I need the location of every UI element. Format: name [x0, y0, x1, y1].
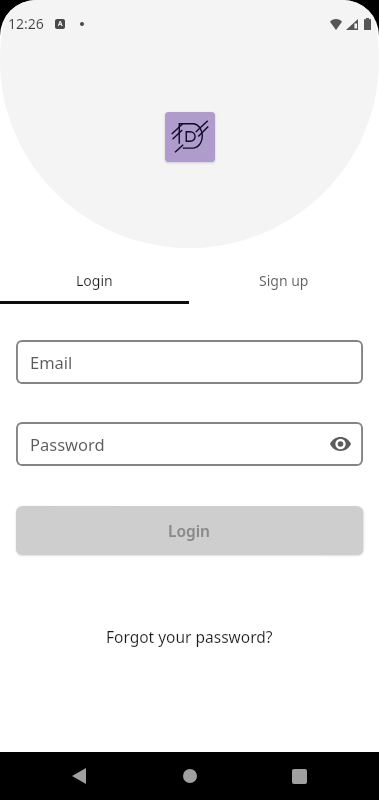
staticText: Forgot your password?	[106, 626, 273, 647]
button[interactable]: Home	[166, 752, 214, 800]
staticText: Login	[168, 520, 211, 541]
button[interactable]: Forgot your password?	[0, 622, 379, 650]
button[interactable]: Email	[16, 340, 363, 384]
staticText: A	[58, 19, 63, 29]
button[interactable]: Login	[16, 506, 363, 555]
button[interactable]: Back	[55, 752, 103, 800]
staticText: Password	[30, 433, 105, 455]
staticText: Sign up	[259, 271, 309, 290]
button[interactable]: Sign up	[189, 263, 379, 297]
button[interactable]: Show password	[326, 430, 354, 458]
button[interactable]: Password	[16, 422, 363, 466]
button[interactable]: Login	[0, 263, 189, 297]
staticText: Login	[76, 271, 113, 290]
staticText: 12:26	[8, 14, 44, 33]
staticText: Email	[30, 351, 73, 373]
button[interactable]: Recent apps	[275, 752, 323, 800]
